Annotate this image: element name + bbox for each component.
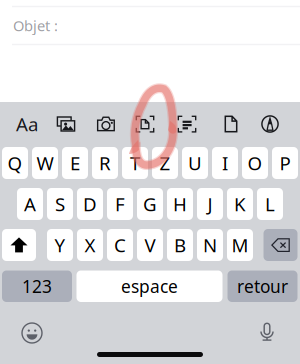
- button[interactable]: Scan text: [170, 109, 204, 139]
- staticText: C: [114, 233, 126, 257]
- button[interactable]: A: [17, 188, 43, 220]
- button[interactable]: Y: [47, 229, 73, 261]
- button[interactable]: J: [197, 188, 223, 220]
- staticText: Z: [159, 151, 170, 175]
- button[interactable]: Emoji keyboard: [15, 318, 49, 348]
- staticText: J: [207, 192, 212, 216]
- button[interactable]: C: [107, 229, 133, 261]
- staticText: T: [130, 151, 140, 175]
- staticText: V: [144, 233, 155, 257]
- staticText: B: [174, 233, 186, 257]
- staticText: X: [84, 233, 95, 257]
- staticText: Objet :: [13, 16, 58, 35]
- staticText: 123: [22, 275, 52, 298]
- staticText: A: [24, 192, 36, 216]
- button[interactable]: Q: [2, 147, 28, 179]
- button[interactable]: Scan document: [128, 109, 162, 139]
- staticText: Q: [7, 151, 22, 175]
- staticText: L: [265, 192, 275, 216]
- staticText: Y: [54, 233, 65, 257]
- button[interactable]: H: [167, 188, 193, 220]
- staticText: P: [279, 151, 290, 175]
- button[interactable]: Attach file: [214, 109, 248, 139]
- button[interactable]: Camera: [89, 109, 123, 139]
- staticText: I: [222, 151, 228, 175]
- button[interactable]: M: [227, 229, 253, 261]
- button[interactable]: I: [212, 147, 238, 179]
- button[interactable]: Photo library: [49, 109, 83, 139]
- button[interactable]: Markup: [253, 109, 287, 139]
- button[interactable]: G: [137, 188, 163, 220]
- staticText: H: [173, 192, 187, 216]
- staticText: O: [247, 151, 262, 175]
- staticText: U: [188, 151, 202, 175]
- button[interactable]: R: [92, 147, 118, 179]
- staticText: S: [55, 192, 65, 216]
- button[interactable]: S: [47, 188, 73, 220]
- button[interactable]: U: [182, 147, 208, 179]
- button[interactable]: F: [107, 188, 133, 220]
- staticText: W: [36, 151, 53, 175]
- staticText: retour: [237, 275, 288, 298]
- button[interactable]: Z: [152, 147, 178, 179]
- staticText: D: [83, 192, 97, 216]
- button[interactable]: Text formatting: [10, 109, 44, 139]
- button[interactable]: E: [62, 147, 88, 179]
- staticText: E: [70, 151, 80, 175]
- staticText: R: [99, 151, 111, 175]
- button[interactable]: N: [197, 229, 223, 261]
- button[interactable]: Dictation: [250, 317, 284, 347]
- button[interactable]: K: [227, 188, 253, 220]
- button[interactable]: B: [167, 229, 193, 261]
- staticText: M: [231, 233, 248, 257]
- staticText: espace: [121, 275, 178, 298]
- button[interactable]: D: [77, 188, 103, 220]
- staticText: G: [143, 192, 157, 216]
- button[interactable]: retour: [227, 270, 297, 302]
- button[interactable]: 123: [2, 270, 72, 302]
- button[interactable]: O: [242, 147, 268, 179]
- button[interactable]: L: [257, 188, 283, 220]
- button[interactable]: P: [272, 147, 298, 179]
- button[interactable]: T: [122, 147, 148, 179]
- staticText: K: [234, 192, 246, 216]
- button[interactable]: Delete: [263, 229, 297, 261]
- button[interactable]: Shift: [2, 229, 36, 261]
- button[interactable]: V: [137, 229, 163, 261]
- button[interactable]: X: [77, 229, 103, 261]
- staticText: N: [203, 233, 217, 257]
- button[interactable]: W: [32, 147, 58, 179]
- staticText: Aa: [16, 112, 38, 136]
- button[interactable]: espace: [76, 270, 222, 302]
- staticText: F: [115, 192, 125, 216]
